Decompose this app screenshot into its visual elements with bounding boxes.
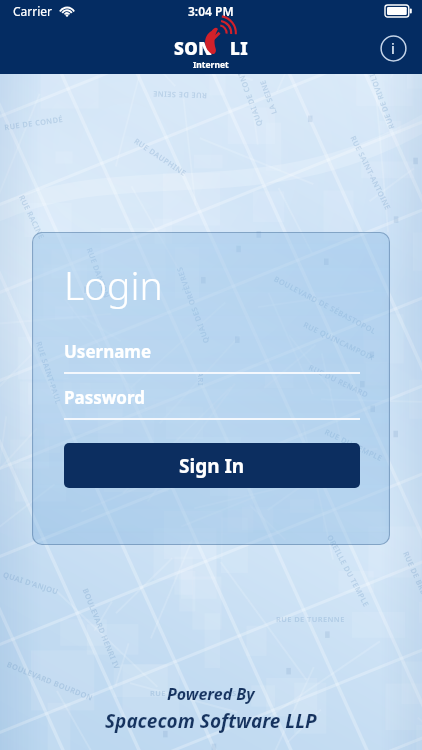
staticText: LI	[230, 37, 249, 60]
staticText: Internet	[193, 59, 229, 71]
staticText: Password	[64, 386, 145, 409]
button[interactable]: Information	[375, 30, 411, 66]
staticText: Login	[64, 258, 163, 311]
staticText: SON	[174, 37, 213, 60]
staticText: 3:04 PM	[188, 3, 234, 19]
staticText: BOULEVARD BOURDON	[5, 659, 94, 703]
staticText: RUE QUINCAMPOIX	[302, 319, 376, 363]
staticText: OREILLE DU TEMPLE	[325, 533, 372, 609]
staticText: RUE DE BRETAGNE	[401, 550, 422, 620]
staticText: RUE DE SEINE	[152, 89, 207, 101]
staticText: RUE DANTON	[85, 246, 112, 300]
staticText: RUE DE RIVOLI	[367, 72, 396, 130]
staticText: QUAI DES ORFÈVRES	[174, 265, 211, 345]
staticText: RUE SAINT-ANTOINE	[348, 134, 393, 212]
staticText: RUE DES TOURNELLES	[150, 688, 237, 698]
staticText: i	[391, 38, 395, 58]
button[interactable]: Sign In	[64, 443, 360, 488]
staticText: RUE DAUPHINE	[132, 136, 189, 178]
staticText: BOULEVARD HENRI IV	[81, 587, 122, 671]
staticText: Spacecom Software LLP	[105, 708, 317, 734]
staticText: ARI	[196, 372, 206, 386]
staticText: Sign In	[179, 453, 245, 479]
staticText: RUE DE CONDÉ	[4, 114, 64, 132]
staticText: Username	[64, 340, 152, 363]
button[interactable]: Password	[64, 385, 360, 420]
staticText: RUE DE TURENNE	[276, 614, 345, 624]
staticText: BOULEVARD DE SÉBASTOPOL	[272, 274, 379, 336]
staticText: LA SEINE	[257, 78, 279, 116]
staticText: Powered By	[167, 683, 255, 705]
button[interactable]: Username	[64, 339, 360, 374]
staticText: RUE SAINT-PAUL	[34, 340, 64, 406]
staticText: RUE RACINE	[17, 193, 47, 241]
staticText: RUE DU TEMPLE	[323, 426, 385, 463]
staticText: Carrier	[13, 3, 53, 19]
staticText: QUAI D'ANJOU	[2, 569, 60, 597]
staticText: QUAI DE CONTI	[234, 66, 264, 128]
staticText: RUE DU RENARD	[307, 362, 371, 400]
